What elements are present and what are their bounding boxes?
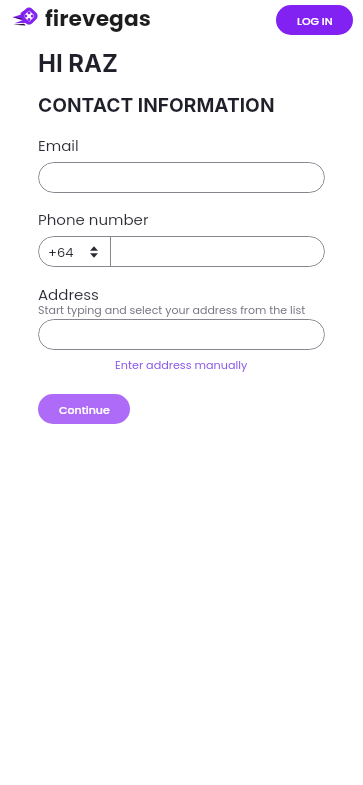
- button[interactable]: firevegas home: [12, 3, 151, 34]
- staticText: firevegas: [45, 3, 151, 34]
- button[interactable]: Continue: [38, 394, 130, 424]
- staticText: HI RAZ: [38, 49, 118, 78]
- staticText: LOG IN: [297, 13, 333, 28]
- button[interactable]: Text field: [38, 162, 325, 193]
- button[interactable]: Enter address manually: [115, 357, 248, 373]
- staticText: +64: [48, 243, 74, 261]
- staticText: Email: [38, 135, 79, 156]
- button[interactable]: LOG IN: [276, 5, 353, 35]
- staticText: CONTACT INFORMATION: [38, 93, 275, 116]
- staticText: Start typing and select your address fro…: [38, 302, 306, 317]
- button[interactable]: Country code +64: [38, 236, 110, 267]
- button[interactable]: Text field: [38, 319, 325, 350]
- staticText: Phone number: [38, 209, 149, 230]
- staticText: Continue: [59, 402, 110, 417]
- staticText: Address: [38, 284, 99, 305]
